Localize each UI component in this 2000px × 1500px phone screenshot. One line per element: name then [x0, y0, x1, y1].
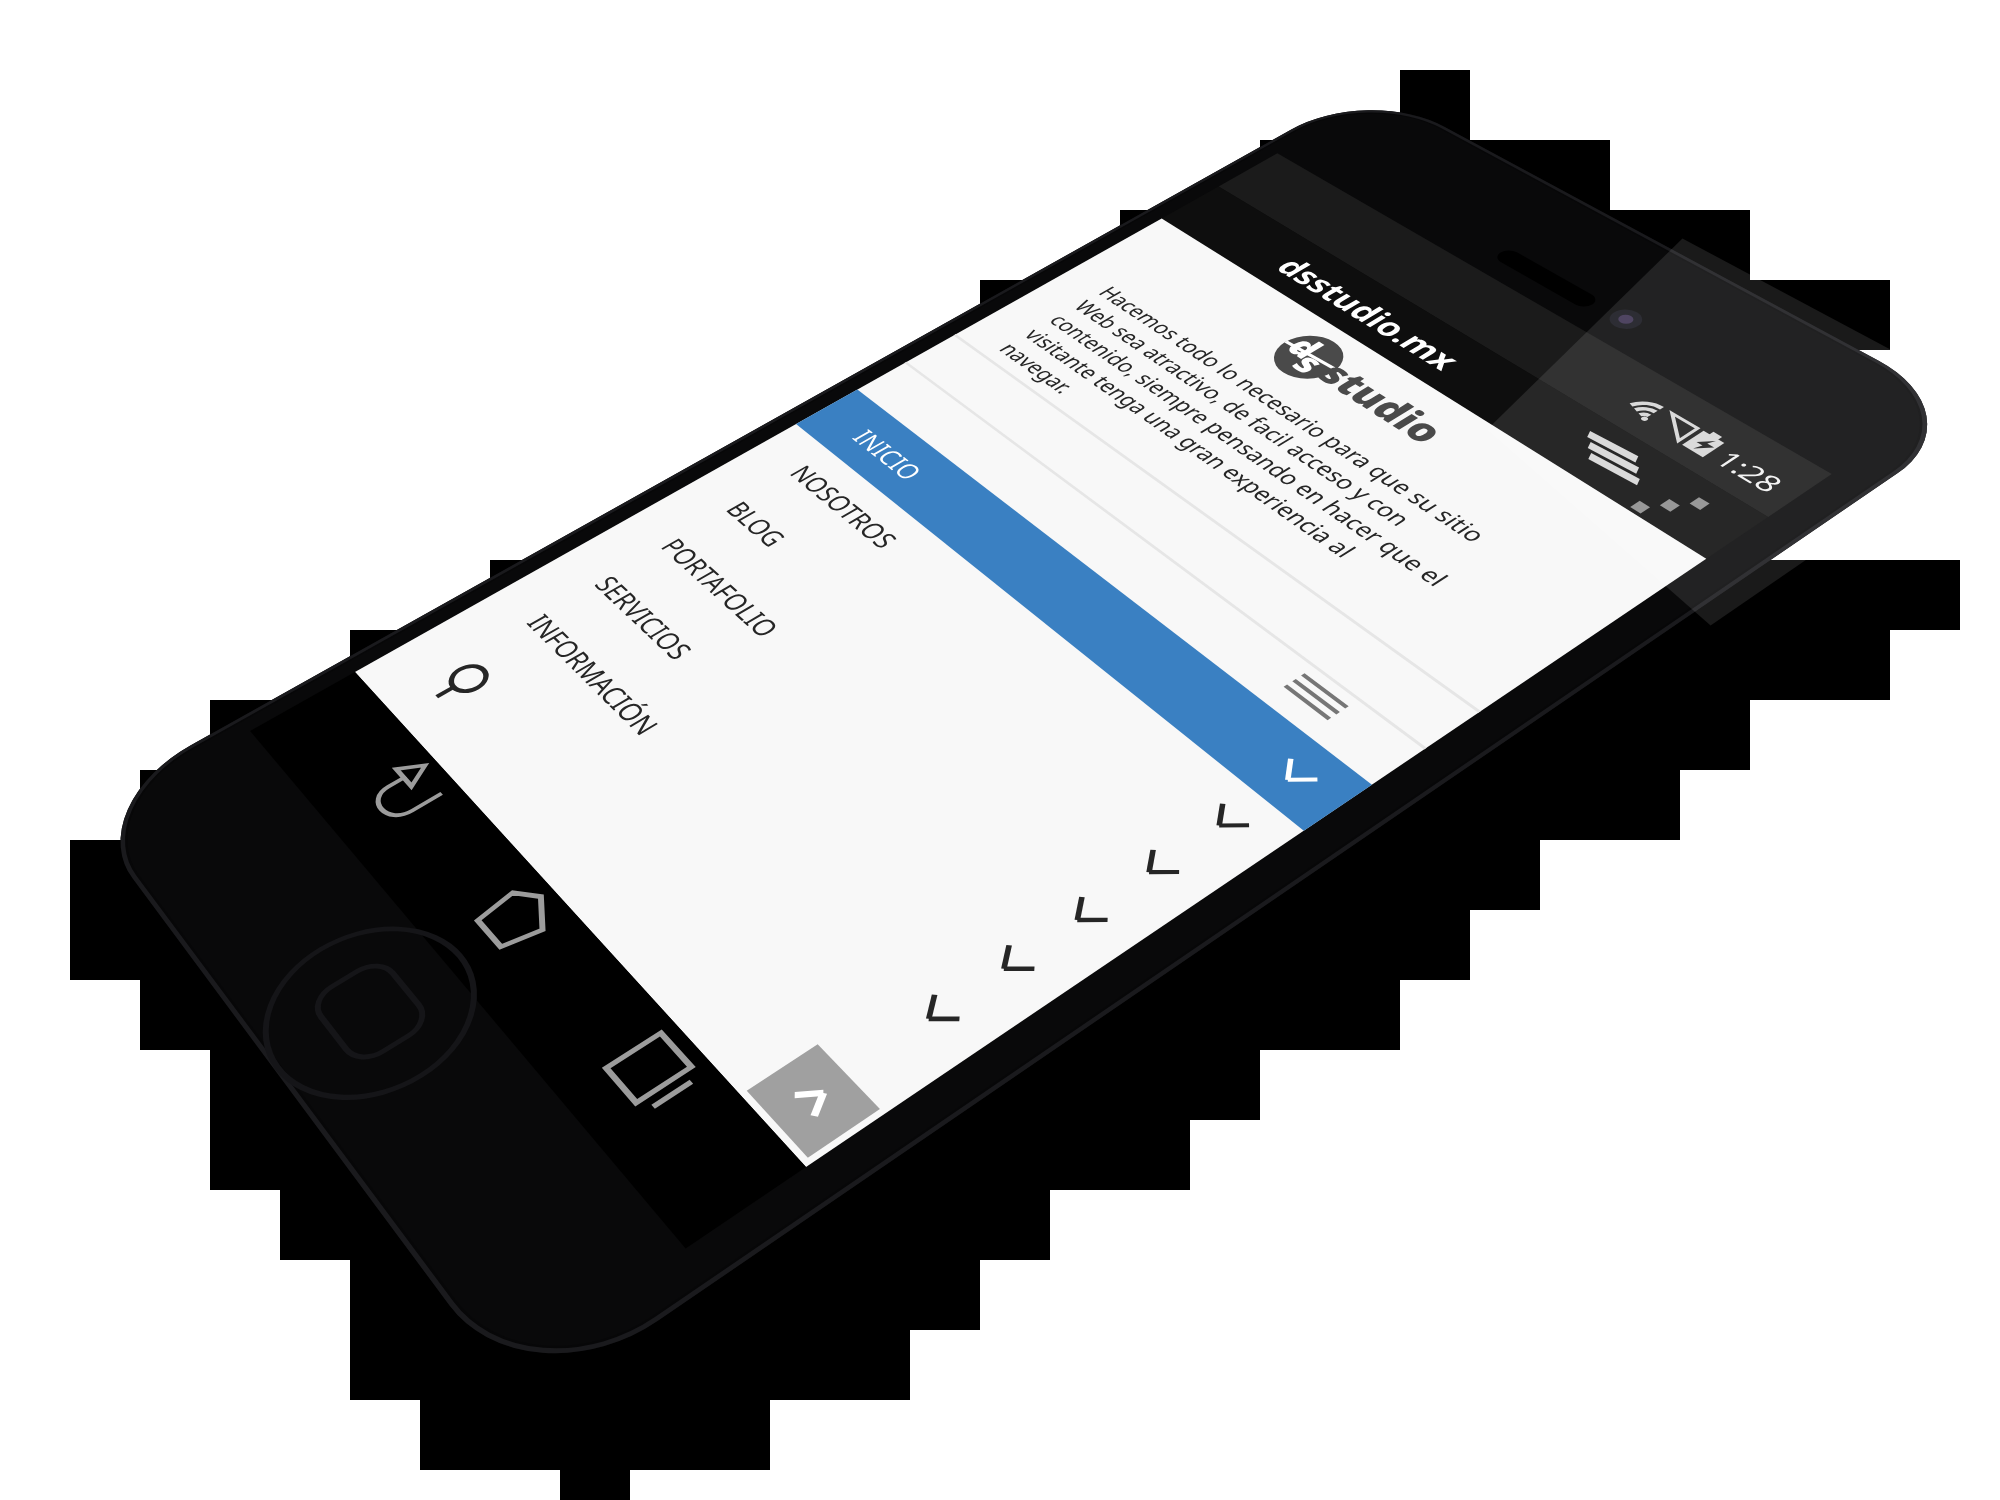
button[interactable]: Search	[384, 626, 534, 743]
button[interactable]: dsstudio.mx	[1162, 186, 1581, 442]
button[interactable]: Tabs	[1519, 402, 1673, 498]
button[interactable]: BLOG	[670, 459, 1234, 926]
button[interactable]: PORTAFOLIO	[605, 495, 1163, 975]
button[interactable]: Menu	[1240, 650, 1425, 785]
button[interactable]: INFORMACIÓN	[471, 569, 1015, 1078]
button[interactable]: Back to top	[747, 1044, 880, 1158]
button[interactable]: INICIO	[796, 389, 1372, 830]
button[interactable]: Recent apps	[580, 1014, 730, 1148]
button[interactable]: More options	[1614, 460, 1770, 559]
button[interactable]: Back	[343, 746, 473, 855]
button[interactable]: Home	[449, 866, 588, 986]
button[interactable]: NOSOTROS	[734, 424, 1304, 878]
button[interactable]: SERVICIOS	[539, 531, 1090, 1025]
